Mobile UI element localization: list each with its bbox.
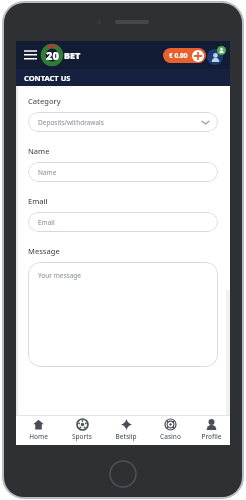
staticText: Home: [29, 432, 48, 441]
button[interactable]: Sports: [60, 415, 104, 445]
staticText: Email: [38, 218, 55, 227]
staticText: Category: [28, 96, 61, 106]
button[interactable]: Your message: [28, 262, 218, 367]
button[interactable]: Menu: [21, 46, 39, 64]
button[interactable]: Name: [28, 162, 218, 182]
staticText: Profile: [201, 432, 222, 441]
button[interactable]: Home: [16, 415, 60, 445]
button[interactable]: Casino: [148, 415, 192, 445]
staticText: Name: [38, 168, 57, 177]
staticText: BET: [64, 49, 81, 61]
staticText: Name: [28, 146, 50, 156]
staticText: Betslip: [115, 432, 137, 441]
staticText: Email: [28, 196, 48, 206]
button[interactable]: € 0.00: [163, 48, 206, 63]
button[interactable]: Betslip: [104, 415, 148, 445]
button[interactable]: Deposits/withdrawals: [28, 112, 218, 132]
staticText: 20: [46, 48, 59, 63]
button[interactable]: 20BET home: [41, 45, 81, 65]
staticText: € 0.00: [169, 51, 188, 60]
button[interactable]: Profile: [192, 415, 230, 445]
staticText: Sports: [72, 432, 92, 441]
button[interactable]: Email: [28, 212, 218, 232]
staticText: Your message: [38, 271, 81, 280]
staticText: Message: [28, 246, 60, 256]
button[interactable]: Account: [207, 46, 226, 65]
staticText: Deposits/withdrawals: [38, 118, 104, 127]
staticText: CONTACT US: [24, 73, 71, 83]
staticText: Casino: [160, 432, 181, 441]
